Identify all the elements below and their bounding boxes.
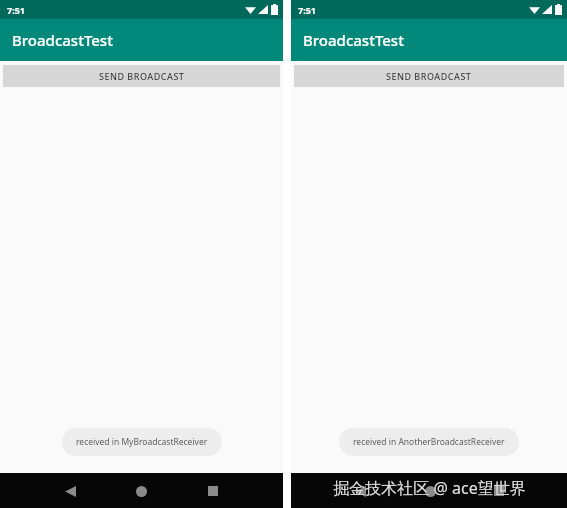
button[interactable]: Recent apps (486, 478, 512, 504)
button[interactable]: Back (57, 478, 83, 504)
button[interactable]: Home (417, 478, 443, 504)
button[interactable]: Back (347, 478, 373, 504)
staticText: SEND BROADCAST (386, 70, 472, 82)
staticText: 7:51 (298, 4, 316, 16)
staticText: received in AnotherBroadcastReceiver (353, 436, 505, 448)
button[interactable]: SEND BROADCAST (3, 65, 280, 87)
staticText: 7:51 (7, 4, 25, 16)
staticText: SEND BROADCAST (99, 70, 185, 82)
button[interactable]: Home (128, 478, 154, 504)
staticText: 掘金技术社区 @ ace望世界 (333, 477, 526, 499)
staticText: BroadcastTest (303, 30, 404, 50)
button[interactable]: Recent apps (200, 478, 226, 504)
button[interactable]: SEND BROADCAST (294, 65, 564, 87)
staticText: received in MyBroadcastReceiver (76, 436, 208, 448)
staticText: BroadcastTest (12, 30, 113, 50)
